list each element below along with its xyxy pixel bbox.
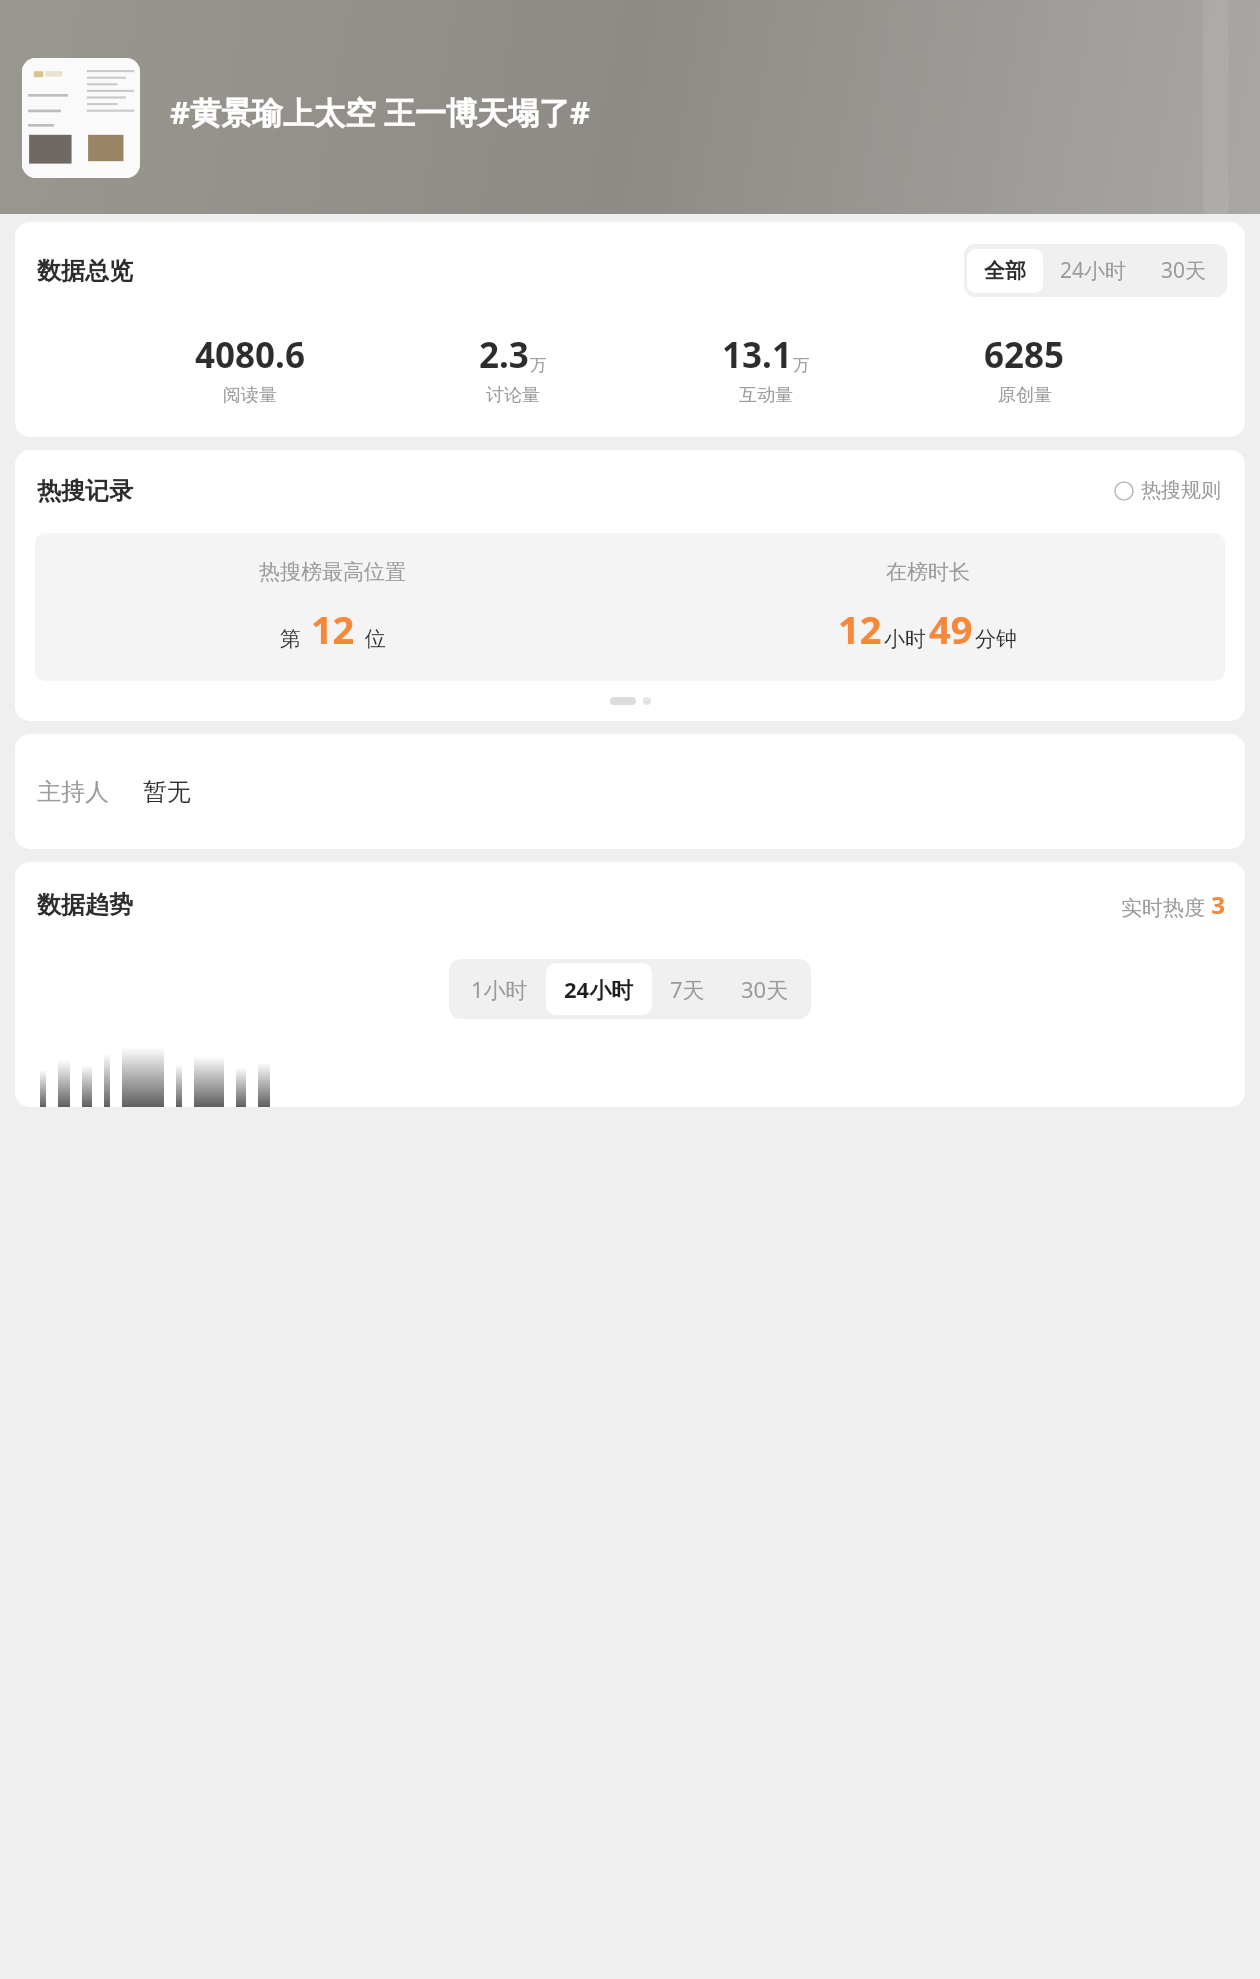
- staticText: 热搜记录: [37, 476, 133, 506]
- staticText: 在榜时长: [886, 559, 970, 585]
- staticText: 万: [793, 355, 810, 376]
- staticText: 1小时: [471, 974, 528, 1004]
- staticText: 7天: [670, 974, 705, 1004]
- button[interactable]: 全部: [967, 249, 1043, 293]
- staticText: #黄景瑜上太空 王一博天塌了#: [170, 91, 591, 133]
- staticText: 主持人: [37, 777, 109, 807]
- staticText: 位: [365, 626, 386, 652]
- staticText: 原创量: [998, 384, 1052, 407]
- staticText: 热搜规则: [1141, 478, 1221, 503]
- staticText: 暂无: [143, 777, 191, 807]
- staticText: 实时热度: [1121, 895, 1205, 921]
- staticText: 阅读量: [223, 384, 277, 407]
- staticText: 4080.6: [195, 331, 305, 379]
- button[interactable]: 30天: [1144, 247, 1224, 294]
- button[interactable]: 主持人: [15, 734, 1245, 849]
- staticText: 小时: [884, 626, 926, 652]
- button[interactable]: 7天: [652, 963, 723, 1015]
- button[interactable]: 热搜规则: [1110, 474, 1225, 507]
- button[interactable]: 24小时: [546, 963, 652, 1015]
- staticText: 分钟: [975, 626, 1017, 652]
- button[interactable]: 话题配图: [22, 58, 140, 178]
- staticText: 热搜榜最高位置: [259, 559, 406, 585]
- staticText: 30天: [741, 974, 789, 1004]
- staticText: 24小时: [1060, 256, 1127, 285]
- staticText: 49: [929, 603, 973, 655]
- staticText: 12: [301, 603, 365, 655]
- staticText: 数据趋势: [37, 890, 133, 920]
- staticText: 24小时: [564, 974, 634, 1004]
- staticText: 2.3: [479, 331, 529, 379]
- button[interactable]: 30天: [723, 963, 807, 1015]
- staticText: 万: [530, 355, 547, 376]
- staticText: 全部: [984, 258, 1026, 284]
- staticText: 讨论量: [486, 384, 540, 407]
- staticText: 数据总览: [37, 256, 133, 286]
- staticText: 互动量: [739, 384, 793, 407]
- staticText: 12: [838, 603, 882, 655]
- staticText: 6285: [984, 331, 1065, 379]
- button[interactable]: 1小时: [453, 963, 546, 1015]
- staticText: 第: [280, 626, 301, 652]
- button[interactable]: 24小时: [1043, 247, 1144, 294]
- staticText: 30天: [1161, 256, 1207, 285]
- staticText: 13.1: [722, 331, 792, 379]
- staticText: 3: [1205, 888, 1225, 921]
